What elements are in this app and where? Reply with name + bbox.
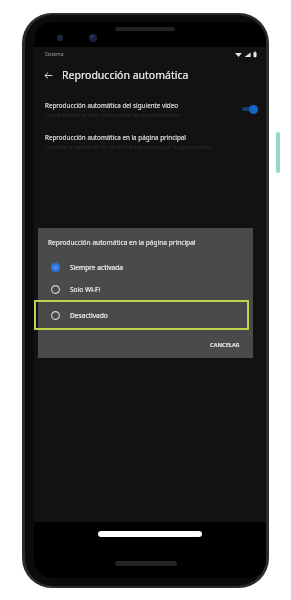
staticText: Reproducción automática del siguiente ví… <box>45 101 179 110</box>
staticText: Cuando termina un vídeo, se reproduce ot… <box>45 112 181 118</box>
staticText: Reproducción automática en la página pri… <box>45 133 186 142</box>
button[interactable]: Desactivado <box>34 300 249 330</box>
staticText: Reproducción automática en la página pri… <box>48 238 196 247</box>
button[interactable]: CANCELAR <box>206 339 244 351</box>
button[interactable]: Reproducción automática del siguiente ví… <box>34 95 266 123</box>
staticText: Siempre activada <box>70 263 124 272</box>
button[interactable]: Solo Wi-Fi <box>38 278 253 300</box>
button[interactable]: Activar reproducción automática <box>242 104 258 114</box>
staticText: Desactivado <box>70 311 108 320</box>
staticText: Solo Wi-Fi <box>70 285 101 294</box>
button[interactable]: Siempre activada <box>38 256 253 278</box>
button[interactable]: Atrás <box>38 65 58 85</box>
staticText: CANCELAR <box>210 341 240 349</box>
staticText: Reproducción automática <box>62 68 189 82</box>
button[interactable]: Reproducción automática en la página pri… <box>34 130 266 153</box>
staticText: Los vídeos se reproducen sin sonido mien… <box>45 144 213 150</box>
staticText: Sistema <box>45 51 64 58</box>
